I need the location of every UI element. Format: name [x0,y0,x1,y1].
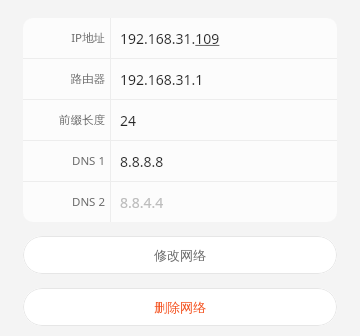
staticText: DNS 1 [71,153,105,169]
staticText: 路由器 [70,72,105,86]
button[interactable]: 前缀长度 [23,100,337,140]
button[interactable]: IP地址 [23,18,337,58]
button[interactable]: 路由器 [23,59,337,99]
button[interactable]: DNS 1 [23,141,337,181]
staticText: IP地址 [71,30,105,46]
staticText: 24 [120,111,137,130]
button[interactable]: DNS 2 [23,182,337,222]
staticText: 192.168.31.109 [120,29,220,48]
staticText: 8.8.8.8 [120,152,164,171]
staticText: 删除网络 [154,299,206,315]
staticText: 修改网络 [154,247,206,263]
staticText: 8.8.4.4 [120,193,164,212]
other: Network details [0,0,360,336]
staticText: DNS 2 [71,194,105,210]
staticText: 前缀长度 [59,113,105,127]
button[interactable]: 修改网络 [23,236,337,274]
staticText: 192.168.31.1 [120,70,204,89]
button[interactable]: 删除网络 [23,288,337,326]
